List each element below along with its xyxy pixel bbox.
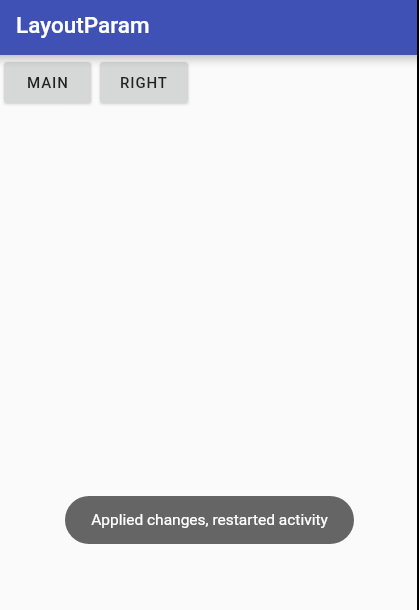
- staticText: LayoutParam: [16, 12, 150, 38]
- staticText: RIGHT: [120, 74, 168, 92]
- staticText: Applied changes, restarted activity: [91, 511, 328, 529]
- button[interactable]: RIGHT: [100, 62, 188, 103]
- button[interactable]: MAIN: [4, 62, 91, 103]
- staticText: MAIN: [27, 74, 69, 92]
